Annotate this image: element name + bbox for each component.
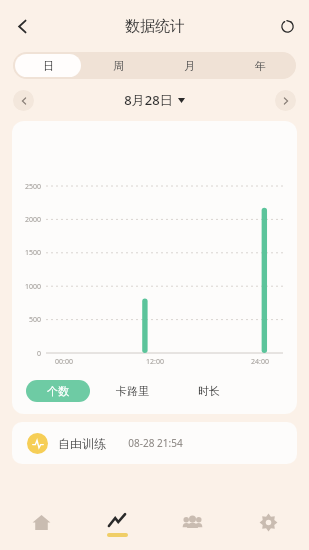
button[interactable]: Back xyxy=(4,8,40,44)
staticText: 卡路里 xyxy=(116,384,149,398)
staticText: 0 xyxy=(12,349,41,359)
staticText: 时长 xyxy=(198,384,220,398)
staticText: 1000 xyxy=(12,282,41,292)
button[interactable]: 年 xyxy=(227,54,294,77)
button[interactable]: Next day xyxy=(275,90,296,111)
button[interactable]: Refresh xyxy=(270,9,304,43)
button[interactable]: Home xyxy=(6,500,76,550)
staticText: 周 xyxy=(113,59,124,73)
staticText: 8月28日 xyxy=(124,91,173,109)
staticText: 00:00 xyxy=(48,357,80,367)
staticText: 24:00 xyxy=(244,357,276,367)
staticText: 自由训练 xyxy=(58,436,106,451)
staticText: 12:00 xyxy=(139,357,171,367)
staticText: 1500 xyxy=(12,248,41,258)
button[interactable]: Previous day xyxy=(13,90,34,111)
button[interactable]: 时长 xyxy=(174,380,244,402)
staticText: 个数 xyxy=(47,384,69,398)
button[interactable]: 自由训练 xyxy=(12,422,297,464)
staticText: 2000 xyxy=(12,215,41,225)
button[interactable]: 卡路里 xyxy=(90,380,174,402)
button[interactable]: 周 xyxy=(85,54,152,77)
staticText: 年 xyxy=(255,59,266,73)
staticText: 2500 xyxy=(12,182,41,192)
staticText: 500 xyxy=(12,315,41,325)
button[interactable]: Community xyxy=(157,500,227,550)
staticText: 日 xyxy=(43,59,54,73)
button[interactable]: 个数 xyxy=(26,380,90,402)
button[interactable]: 日 xyxy=(15,54,81,77)
button[interactable]: Statistics xyxy=(82,500,152,550)
button[interactable]: 8月28日 xyxy=(124,91,185,109)
staticText: 数据统计 xyxy=(125,17,185,36)
staticText: 08-28 21:54 xyxy=(128,436,183,450)
staticText: 月 xyxy=(184,59,195,73)
button[interactable]: 月 xyxy=(156,54,223,77)
button[interactable]: Settings xyxy=(233,500,303,550)
